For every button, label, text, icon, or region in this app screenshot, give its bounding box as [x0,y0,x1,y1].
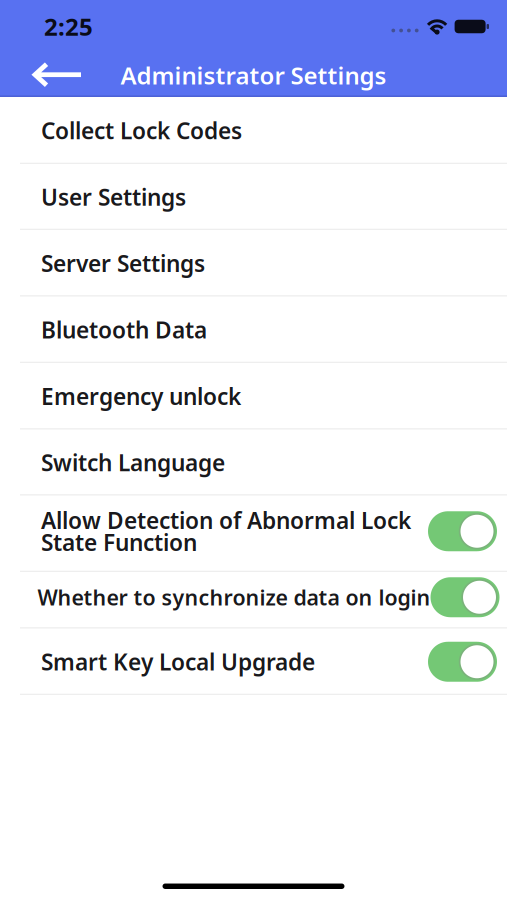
staticText: User Settings [41,182,186,212]
button[interactable]: Server Settings [0,230,507,296]
button[interactable]: Switch Language [0,429,507,495]
staticText: Emergency unlock [41,381,241,411]
staticText: 2:25 [44,11,93,42]
button[interactable]: Smart Key Local Upgrade [0,628,507,695]
staticText: Bluetooth Data [41,315,207,345]
staticText: Server Settings [41,248,205,278]
staticText: State Function [41,527,197,557]
button[interactable]: User Settings [0,164,507,230]
staticText: Allow Detection of Abnormal Lock [41,505,411,535]
button[interactable]: Allow Detection of Abnormal Lock [0,495,507,572]
button[interactable]: Whether to synchronize data on login [0,572,507,628]
button[interactable]: Emergency unlock [0,363,507,429]
button[interactable]: Collect Lock Codes [0,97,507,164]
staticText: Whether to synchronize data on login [37,583,430,611]
staticText: Administrator Settings [120,59,386,91]
button[interactable]: Bluetooth Data [0,296,507,363]
button[interactable]: Back [24,55,84,95]
staticText: Smart Key Local Upgrade [41,647,315,677]
staticText: Collect Lock Codes [41,115,242,145]
staticText: Switch Language [41,447,225,477]
